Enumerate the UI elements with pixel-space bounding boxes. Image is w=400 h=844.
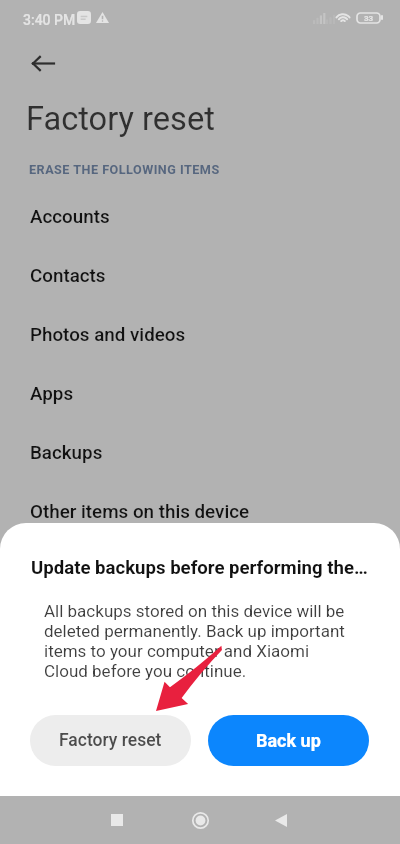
staticText: Other items on this device xyxy=(30,501,250,523)
button[interactable]: Other items on this device xyxy=(0,482,400,541)
button[interactable]: Recent apps xyxy=(93,796,141,844)
staticText: Update backups before performing the… xyxy=(31,557,368,579)
staticText: Factory reset xyxy=(59,730,162,751)
staticText: All backups stored on this device will b… xyxy=(44,601,347,681)
button[interactable]: Apps xyxy=(0,364,400,423)
staticText: 3:40 PM xyxy=(23,12,76,28)
staticText: Back up xyxy=(256,730,321,751)
button[interactable]: Factory reset xyxy=(30,715,191,766)
staticText: Contacts xyxy=(30,265,106,287)
staticText: ERASE THE FOLLOWING ITEMS xyxy=(29,162,220,177)
staticText: Backups xyxy=(30,442,103,464)
staticText: Apps xyxy=(30,383,74,405)
staticText: Accounts xyxy=(30,206,110,228)
button[interactable]: Home xyxy=(176,796,224,844)
button[interactable]: Accounts xyxy=(0,187,400,246)
staticText: 33 xyxy=(364,14,374,23)
button[interactable]: Back xyxy=(22,42,64,84)
staticText: Factory reset xyxy=(26,100,215,138)
button[interactable]: Contacts xyxy=(0,246,400,305)
button[interactable]: Backups xyxy=(0,423,400,482)
button[interactable]: Photos and videos xyxy=(0,305,400,364)
staticText: Photos and videos xyxy=(30,324,186,346)
button[interactable]: Back xyxy=(257,796,305,844)
button[interactable]: Back up xyxy=(208,715,369,766)
